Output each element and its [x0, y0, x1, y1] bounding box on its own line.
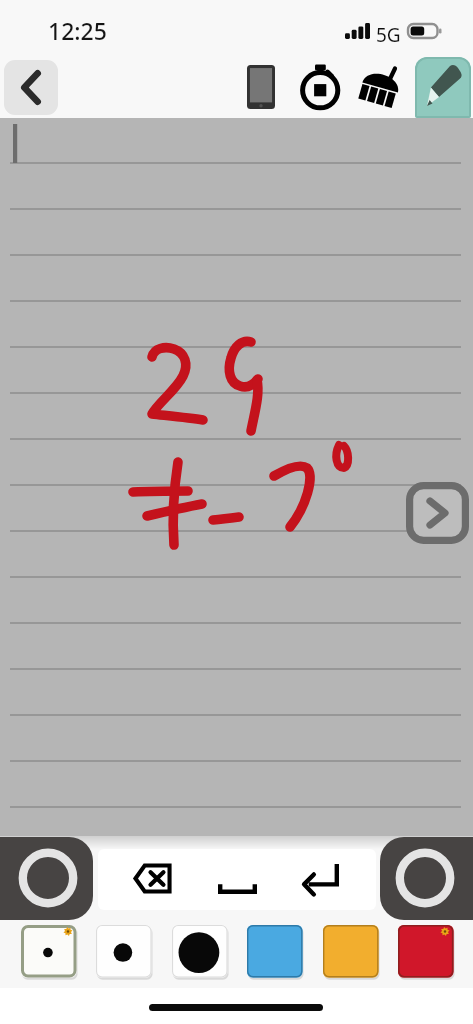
- button[interactable]: Enter: [280, 849, 376, 910]
- button[interactable]: Device: [235, 58, 287, 114]
- button[interactable]: Redo: [380, 837, 473, 920]
- button[interactable]: Next: [406, 482, 470, 545]
- button[interactable]: Space: [194, 849, 280, 910]
- button[interactable]: Pen style: [21, 925, 79, 981]
- button[interactable]: Pen style: [323, 925, 381, 981]
- button[interactable]: Pen style: [398, 925, 456, 981]
- staticText: 5G: [376, 22, 401, 48]
- button[interactable]: Backspace: [98, 849, 194, 910]
- button[interactable]: Clear: [355, 58, 407, 114]
- button[interactable]: Pen style: [247, 925, 305, 981]
- button[interactable]: Stopwatch: [295, 58, 347, 114]
- button[interactable]: Pen style: [172, 925, 230, 981]
- button[interactable]: Pen style: [96, 925, 154, 981]
- staticText: 12:25: [48, 15, 107, 46]
- button[interactable]: Undo: [0, 837, 93, 920]
- button[interactable]: Pen: [415, 57, 471, 118]
- button[interactable]: Back: [4, 60, 58, 115]
